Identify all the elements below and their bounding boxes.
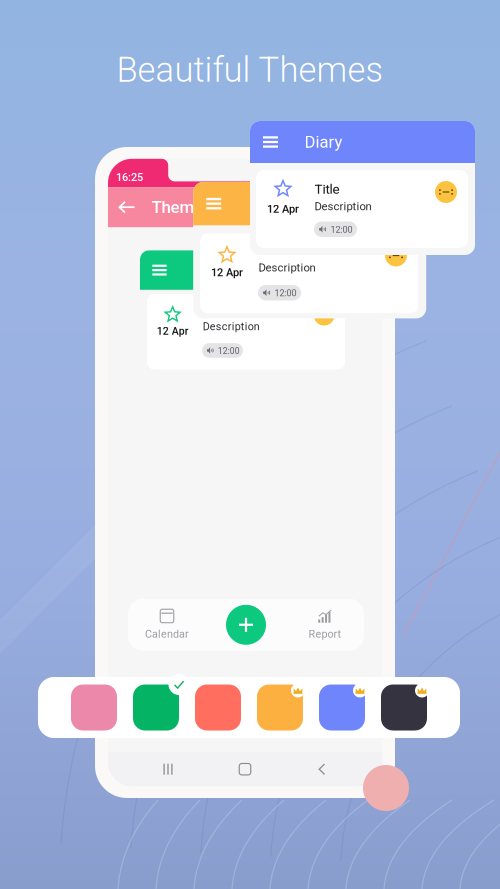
staticText: 12 Apr [211,266,243,279]
button[interactable]: Blue theme [319,684,365,730]
staticText: Report [308,628,341,640]
staticText: Description [315,200,372,213]
button[interactable]: Menu [145,250,174,290]
button[interactable]: Add entry [226,605,266,645]
staticText: Calendar [145,628,189,640]
button[interactable]: Red theme [195,684,241,730]
staticText: Themes [151,197,212,217]
button[interactable]: Orange theme [257,684,303,730]
staticText: Diary [304,132,342,152]
staticText: Description [203,320,260,333]
button[interactable]: Menu [199,182,229,225]
button[interactable]: Menu [255,121,285,163]
staticText: 12 Apr [267,203,299,215]
staticText: 12:00 [218,346,240,356]
staticText: 16:25 [116,171,143,184]
button[interactable]: Recents [151,754,185,784]
button[interactable]: Report [286,601,364,649]
button[interactable]: Pink theme [71,684,117,730]
staticText: Title [315,181,340,197]
staticText: Description [259,261,316,274]
button[interactable]: Green theme [133,684,179,730]
staticText: 12 Apr [157,325,189,337]
staticText: 12:00 [330,224,352,235]
button[interactable]: Back [111,187,141,227]
staticText: 12:00 [274,288,296,298]
button[interactable]: Dark theme [381,684,427,730]
button[interactable]: Back [305,754,339,784]
staticText: Beautiful Themes [116,50,383,90]
button[interactable]: Home [228,754,262,784]
button[interactable]: Calendar [128,601,206,649]
